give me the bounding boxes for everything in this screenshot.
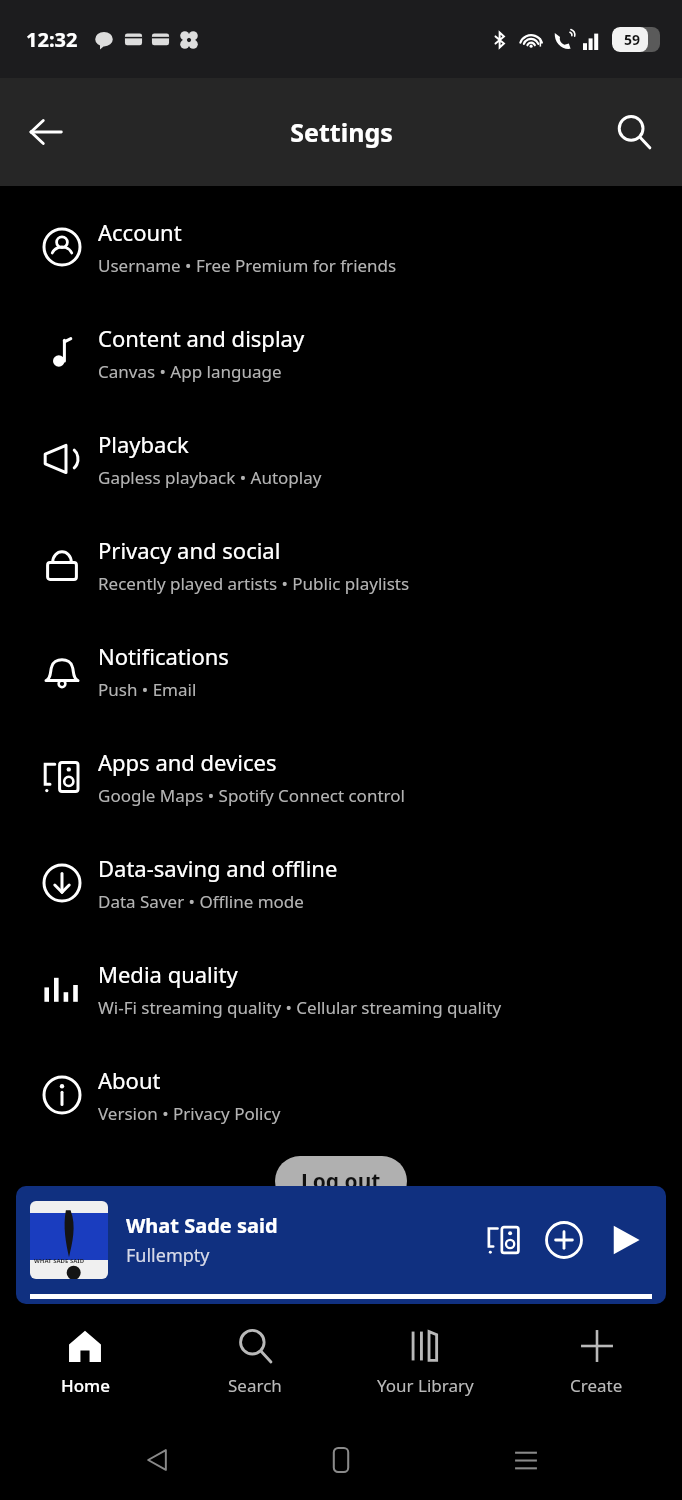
button[interactable]: Your Library	[340, 1304, 511, 1420]
button[interactable]: WHAT SADE SAID	[16, 1186, 666, 1304]
staticText: Gapless playback • Autoplay	[98, 466, 322, 489]
button[interactable]: Add to playlist	[538, 1214, 590, 1266]
button[interactable]: Back	[12, 98, 80, 166]
button[interactable]: Notifications	[0, 618, 682, 724]
button[interactable]: Content and display	[0, 300, 682, 406]
staticText: Log out	[301, 1167, 381, 1196]
button[interactable]: About	[0, 1042, 682, 1148]
staticText: Wi-Fi streaming quality • Cellular strea…	[98, 996, 502, 1019]
staticText: WHAT SADE SAID	[34, 1257, 85, 1265]
staticText: Version • Privacy Policy	[98, 1102, 281, 1125]
staticText: Create	[570, 1374, 623, 1397]
button[interactable]: Playback	[0, 406, 682, 512]
button[interactable]: Connect to a device	[478, 1214, 530, 1266]
staticText: Settings	[290, 115, 393, 149]
staticText: Push • Email	[98, 678, 197, 701]
staticText: Privacy and social	[98, 535, 281, 565]
button[interactable]: Log out	[275, 1156, 407, 1206]
button[interactable]: Home	[0, 1304, 170, 1420]
staticText: 12:32	[26, 26, 78, 53]
button[interactable]: Play	[600, 1214, 652, 1266]
staticText: Username • Free Premium for friends	[98, 254, 397, 277]
staticText: What Sade said	[126, 1212, 278, 1239]
button[interactable]: Search	[602, 100, 666, 164]
button[interactable]: Search	[170, 1304, 340, 1420]
staticText: Recently played artists • Public playlis…	[98, 572, 410, 595]
staticText: 59	[624, 30, 641, 49]
button[interactable]: Create	[511, 1304, 682, 1420]
button[interactable]: Media quality	[0, 936, 682, 1042]
staticText: Data Saver • Offline mode	[98, 890, 304, 913]
staticText: Search	[228, 1374, 282, 1397]
staticText: Fullempty	[126, 1243, 210, 1268]
button[interactable]: Recent apps	[498, 1432, 554, 1488]
staticText: Apps and devices	[98, 747, 277, 777]
button[interactable]: Home	[313, 1432, 369, 1488]
button[interactable]: Data-saving and offline	[0, 830, 682, 936]
staticText: Content and display	[98, 323, 305, 353]
button[interactable]: Privacy and social	[0, 512, 682, 618]
button[interactable]: Back	[129, 1432, 185, 1488]
staticText: Your Library	[377, 1374, 474, 1397]
button[interactable]: Account	[0, 194, 682, 300]
staticText: Account	[98, 217, 182, 247]
staticText: Canvas • App language	[98, 360, 282, 383]
staticText: Home	[61, 1374, 110, 1397]
staticText: Media quality	[98, 959, 238, 989]
staticText: Notifications	[98, 641, 229, 671]
staticText: Google Maps • Spotify Connect control	[98, 784, 405, 807]
staticText: Playback	[98, 429, 189, 459]
staticText: About	[98, 1065, 161, 1095]
staticText: Data-saving and offline	[98, 853, 338, 883]
button[interactable]: Apps and devices	[0, 724, 682, 830]
